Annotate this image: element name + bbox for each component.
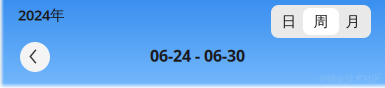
button[interactable]: 周 — [305, 7, 337, 36]
button[interactable]: Back — [20, 42, 50, 72]
staticText: 日 — [281, 12, 296, 30]
staticText: @掘金技术社区 — [319, 72, 381, 84]
staticText: 2024年 — [18, 5, 65, 24]
staticText: 06-24 - 06-30 — [150, 45, 245, 66]
button[interactable]: 日 — [273, 7, 305, 36]
staticText: 周 — [313, 12, 328, 30]
staticText: 月 — [345, 12, 360, 30]
button[interactable]: 月 — [337, 7, 369, 36]
